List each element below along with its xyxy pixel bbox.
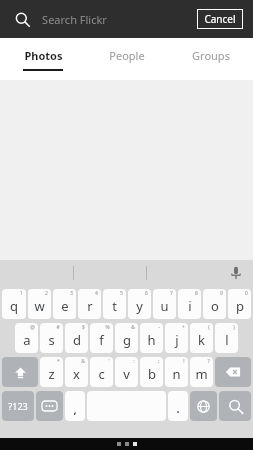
staticText: 7 — [170, 290, 173, 297]
staticText: u — [160, 297, 169, 315]
staticText: y — [136, 297, 143, 315]
staticText: & — [81, 358, 85, 365]
staticText: . — [176, 401, 180, 416]
button[interactable]: 3 — [53, 289, 76, 319]
staticText: k — [198, 331, 205, 349]
button[interactable]: @ — [15, 323, 38, 353]
staticText: ( — [208, 324, 210, 331]
button[interactable]: Search Flickr — [42, 0, 191, 38]
button[interactable]: Change language — [190, 391, 217, 421]
staticText: Cancel — [204, 12, 236, 26]
button[interactable]: 0 — [228, 289, 251, 319]
button[interactable]: ; — [140, 357, 163, 387]
staticText: - — [158, 324, 160, 331]
button[interactable]: 7 — [153, 289, 176, 319]
button[interactable]: People — [85, 38, 169, 80]
staticText: 0 — [245, 290, 248, 297]
button[interactable]: + — [165, 323, 188, 353]
staticText: , — [73, 402, 77, 417]
button[interactable]: Groups — [169, 38, 253, 80]
staticText: Search Flickr — [42, 12, 107, 27]
button[interactable]: Backspace — [215, 357, 251, 387]
button[interactable]: Cancel — [204, 12, 236, 26]
staticText: z — [48, 365, 55, 383]
button[interactable]: 2 — [28, 289, 51, 319]
button[interactable]: 8 — [178, 289, 201, 319]
button[interactable]: : — [115, 357, 138, 387]
staticText: j — [175, 331, 179, 349]
button[interactable]: ( — [190, 323, 213, 353]
staticText: % — [105, 324, 110, 331]
staticText: b — [148, 365, 156, 383]
staticText: e — [61, 297, 69, 315]
button[interactable]: Search — [10, 7, 34, 31]
staticText: x — [73, 365, 80, 383]
staticText: p — [236, 297, 244, 315]
button[interactable]: 5 — [103, 289, 126, 319]
button[interactable]: 9 — [203, 289, 226, 319]
button[interactable]: Emoji — [36, 391, 63, 421]
button[interactable]: ?123 — [2, 391, 34, 421]
staticText: 6 — [145, 290, 148, 297]
button[interactable]: % — [90, 323, 113, 353]
button[interactable]: ! — [165, 357, 188, 387]
staticText: : — [133, 358, 135, 365]
staticText: f — [99, 331, 104, 349]
button[interactable]: # — [40, 323, 63, 353]
button[interactable]: & — [65, 357, 88, 387]
staticText: ' — [108, 358, 110, 365]
staticText: ? — [207, 358, 210, 365]
button[interactable]: . — [168, 391, 188, 421]
staticText: o — [211, 297, 219, 315]
staticText: 3 — [70, 290, 73, 297]
staticText: ! — [183, 358, 185, 365]
staticText: l — [225, 331, 229, 349]
staticText: 5 — [120, 290, 123, 297]
staticText: ) — [233, 324, 235, 331]
staticText: 4 — [95, 290, 98, 297]
button[interactable]: * — [40, 357, 63, 387]
button[interactable]: Photos — [0, 38, 85, 80]
button[interactable]: & — [115, 323, 138, 353]
button[interactable]: Search — [219, 391, 251, 421]
staticText: 1 — [20, 290, 23, 297]
staticText: q — [10, 297, 18, 315]
button[interactable]: Shift — [2, 357, 38, 387]
staticText: ; — [158, 358, 160, 365]
button[interactable]: 1 — [2, 289, 26, 319]
button[interactable]: ' — [90, 357, 113, 387]
button[interactable]: ? — [190, 357, 213, 387]
staticText: ?123 — [8, 400, 28, 412]
button[interactable]: Voice input — [219, 260, 253, 286]
staticText: v — [123, 365, 130, 383]
staticText: w — [34, 297, 45, 315]
staticText: @ — [30, 324, 35, 331]
staticText: + — [182, 324, 185, 331]
staticText: People — [109, 48, 145, 63]
button[interactable]: 6 — [128, 289, 151, 319]
button[interactable]: $ — [65, 323, 88, 353]
staticText: n — [172, 365, 181, 383]
staticText: m — [195, 365, 208, 383]
staticText: a — [23, 331, 31, 349]
button[interactable]: ) — [215, 323, 238, 353]
staticText: * — [57, 358, 60, 365]
staticText: $ — [82, 324, 85, 331]
staticText: g — [123, 331, 131, 349]
button[interactable]: , — [65, 391, 85, 421]
staticText: i — [188, 297, 192, 315]
button[interactable]: 4 — [78, 289, 101, 319]
staticText: t — [112, 297, 117, 315]
button[interactable]: - — [140, 323, 163, 353]
staticText: Groups — [192, 48, 230, 63]
staticText: 2 — [45, 290, 48, 297]
staticText: # — [56, 324, 60, 331]
staticText: s — [48, 331, 55, 349]
staticText: 9 — [220, 290, 223, 297]
